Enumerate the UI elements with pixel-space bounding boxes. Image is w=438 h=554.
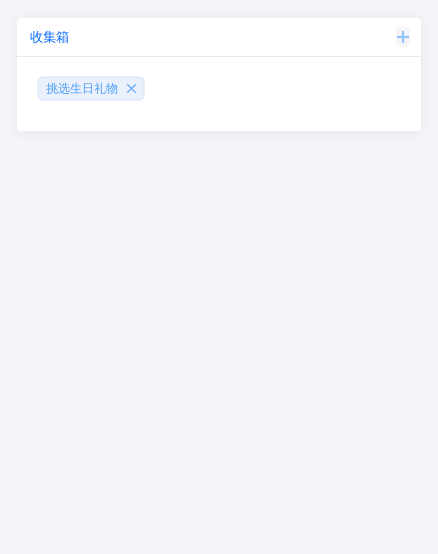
staticText: 收集箱 <box>30 29 69 45</box>
button[interactable]: Add item <box>396 27 410 47</box>
staticText: 挑选生日礼物 <box>46 81 118 96</box>
button[interactable]: 挑选生日礼物 <box>38 77 144 100</box>
